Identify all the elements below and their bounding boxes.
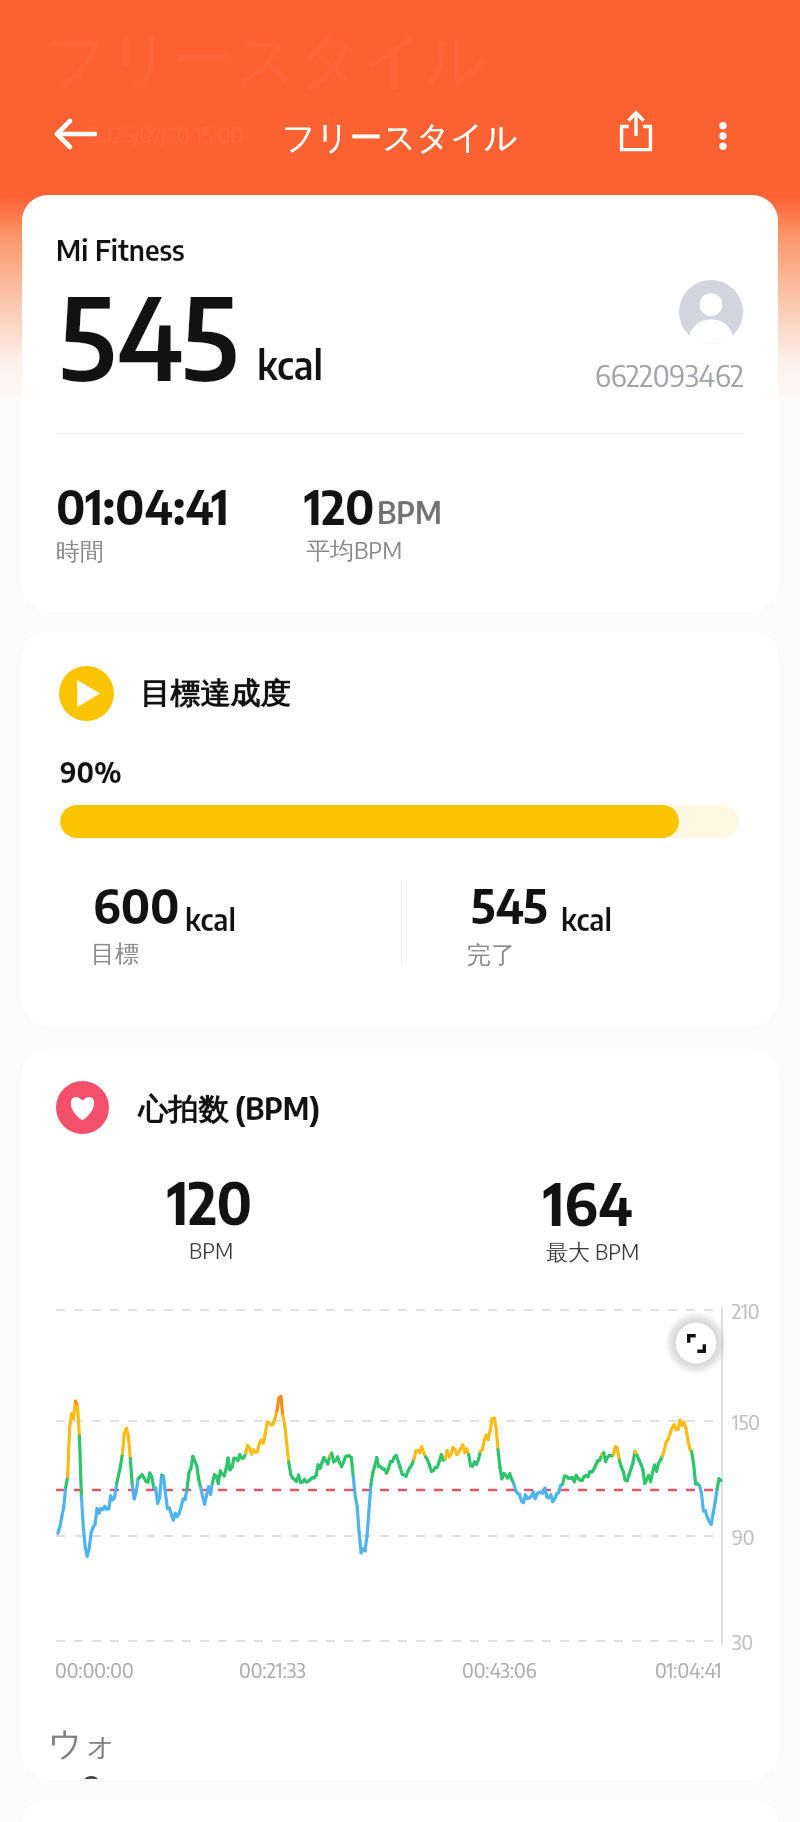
- staticText: ウォ: [48, 1722, 118, 1765]
- staticText: 目標: [91, 939, 139, 969]
- staticText: Mi Fitness: [56, 231, 185, 267]
- staticText: 545: [471, 876, 548, 935]
- staticText: BPM: [189, 1236, 234, 1264]
- staticText: 時間: [56, 537, 104, 567]
- staticText: 90%: [60, 754, 122, 789]
- staticText: 00:43:06: [462, 1657, 537, 1682]
- staticText: kcal: [561, 900, 612, 937]
- staticText: 210: [732, 1298, 760, 1323]
- staticText: 150: [732, 1409, 760, 1434]
- staticText: 01:04:41: [655, 1657, 722, 1682]
- staticText: 00:21:33: [239, 1657, 306, 1682]
- staticText: フリースタイル: [282, 117, 518, 159]
- staticText: 目標達成度: [140, 675, 290, 713]
- staticText: 心拍数 (BPM): [138, 1089, 320, 1129]
- staticText: 最大 BPM: [546, 1237, 640, 1266]
- button[interactable]: Share: [602, 97, 670, 165]
- staticText: 164: [543, 1167, 633, 1238]
- staticText: 120: [167, 1166, 253, 1237]
- staticText: BPM: [377, 492, 442, 531]
- staticText: 平均BPM: [306, 534, 403, 566]
- staticText: 01:04:41: [56, 477, 229, 536]
- staticText: 完了: [467, 940, 515, 970]
- staticText: kcal: [257, 340, 323, 389]
- button[interactable]: Back: [42, 100, 110, 168]
- button[interactable]: Expand chart: [664, 1311, 728, 1375]
- staticText: 90: [732, 1524, 755, 1549]
- staticText: 30: [732, 1629, 754, 1654]
- staticText: 2025/07/20 15:00: [90, 120, 244, 148]
- staticText: 120: [304, 477, 375, 536]
- staticText: 6622093462: [595, 357, 744, 393]
- staticText: kcal: [185, 900, 236, 937]
- staticText: 545: [59, 265, 239, 406]
- staticText: 00:00:00: [55, 1657, 134, 1682]
- staticText: 8: [82, 1768, 101, 1779]
- staticText: 600: [93, 876, 180, 935]
- button[interactable]: More options: [689, 102, 757, 170]
